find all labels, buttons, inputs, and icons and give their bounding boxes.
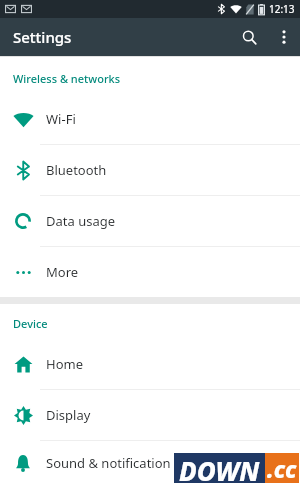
staticText: 12:13 xyxy=(269,2,295,16)
staticText: More xyxy=(46,263,79,281)
button[interactable]: Wi-Fi xyxy=(0,94,300,144)
button[interactable]: More options xyxy=(268,21,300,53)
staticText: Data usage xyxy=(46,212,116,230)
button[interactable]: Sound & notification xyxy=(0,441,300,484)
staticText: .cc xyxy=(267,453,297,483)
staticText: Display xyxy=(46,406,91,424)
staticText: Device xyxy=(13,316,48,331)
button[interactable]: Home xyxy=(0,339,300,389)
staticText: DOWN xyxy=(179,453,260,483)
button[interactable]: Search xyxy=(230,18,268,56)
staticText: Home xyxy=(46,355,83,373)
staticText: Wi-Fi xyxy=(46,110,76,128)
staticText: Sound & notification xyxy=(46,454,171,472)
button[interactable]: More xyxy=(0,247,300,297)
staticText: Settings xyxy=(13,27,72,47)
button[interactable]: Display xyxy=(0,390,300,440)
staticText: Bluetooth xyxy=(46,161,107,179)
staticText: Wireless & networks xyxy=(13,71,121,86)
button[interactable]: Data usage xyxy=(0,196,300,246)
button[interactable]: Bluetooth xyxy=(0,145,300,195)
